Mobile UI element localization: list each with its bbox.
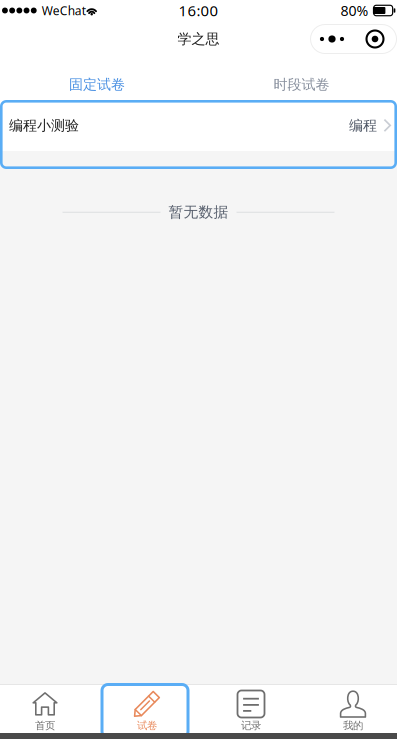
staticText: 记录 [241, 719, 261, 732]
staticText: 编程小测验 [9, 117, 79, 134]
staticText: 我的 [343, 719, 363, 732]
button[interactable]: 记录 [201, 685, 300, 733]
button[interactable]: 我的 [303, 685, 397, 733]
staticText: 编程 [349, 117, 377, 134]
button[interactable]: 试卷 [97, 685, 196, 733]
staticText: WeChat [42, 2, 86, 19]
staticText: 固定试卷 [69, 76, 125, 93]
staticText: 80% [340, 1, 368, 20]
staticText: 试卷 [137, 719, 157, 732]
staticText: 暂无数据 [168, 203, 228, 221]
button[interactable]: Close mini program [353, 24, 396, 53]
button[interactable]: 首页 [0, 685, 94, 733]
staticText: 16:00 [178, 0, 218, 21]
button[interactable]: 固定试卷 [0, 57, 194, 100]
button[interactable]: 时段试卷 [194, 57, 397, 100]
button[interactable]: 编程小测验 [0, 100, 397, 169]
staticText: 时段试卷 [273, 76, 329, 93]
button[interactable]: More options [310, 24, 353, 53]
staticText: 学之思 [177, 30, 219, 48]
staticText: 首页 [35, 719, 55, 732]
